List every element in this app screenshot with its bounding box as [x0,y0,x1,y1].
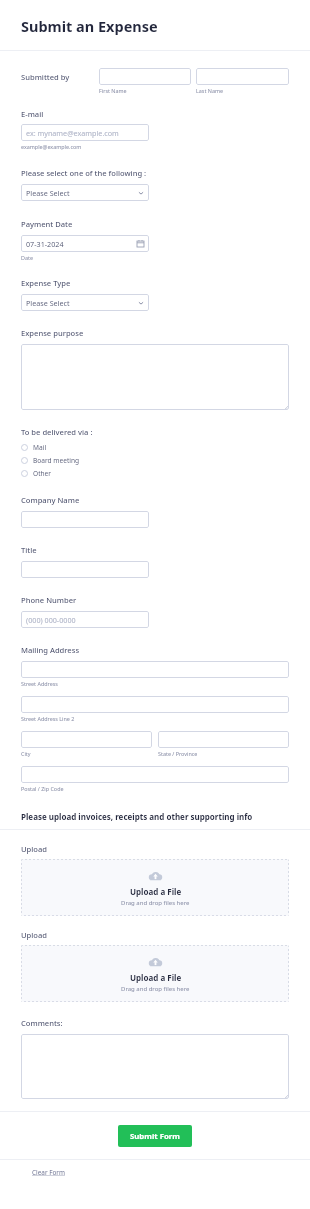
staticText: Payment Date [21,219,73,229]
button[interactable]: Clear Form [32,1168,65,1177]
button[interactable]: ex: myname@example.com [21,124,149,141]
button[interactable]: Upload a File [21,859,289,916]
staticText: Submit an Expense [21,16,158,36]
staticText: Mail [33,443,47,452]
staticText: Company Name [21,495,80,505]
staticText: Please select one of the following : [21,168,147,178]
staticText: Please Select [26,188,70,198]
staticText: First Name [99,87,127,94]
staticText: Comments: [21,1018,63,1028]
staticText: (000) 000-0000 [26,615,76,625]
button[interactable]: Other [21,467,289,480]
staticText: Street Address Line 2 [21,715,75,722]
button[interactable]: (000) 000-0000 [21,611,149,628]
staticText: Mailing Address [21,645,80,655]
button[interactable] [21,561,149,578]
staticText: Upload [21,844,48,854]
button[interactable] [196,68,289,85]
staticText: Street Address [21,680,58,687]
staticText: Submit Form [130,1131,180,1142]
button[interactable] [21,1034,289,1099]
button[interactable]: Submit Form [118,1125,192,1147]
staticText: Please upload invoices, receipts and oth… [21,811,253,822]
staticText: Drag and drop files here [121,985,190,993]
button[interactable]: Mail [21,441,289,454]
button[interactable] [21,344,289,410]
button[interactable] [21,661,289,678]
button[interactable] [21,696,289,713]
staticText: example@example.com [21,143,82,150]
button[interactable] [21,511,149,528]
button[interactable]: Please Select [21,294,149,311]
staticText: Postal / Zip Code [21,785,64,792]
staticText: Board meeting [33,456,80,465]
button[interactable]: 07-31-2024 [21,235,149,252]
staticText: Upload [21,930,48,940]
staticText: Expense Type [21,278,71,288]
staticText: To be delivered via : [21,427,93,437]
button[interactable] [21,731,152,748]
staticText: Upload a File [130,972,182,983]
staticText: Submitted by [21,72,70,82]
button[interactable] [21,766,289,783]
staticText: Date [21,254,33,261]
staticText: Last Name [196,87,223,94]
staticText: Please Select [26,298,70,308]
staticText: State / Province [158,750,198,757]
staticText: 07-31-2024 [26,239,64,249]
staticText: E-mail [21,109,44,119]
staticText: Clear Form [32,1168,65,1177]
button[interactable]: Please Select [21,184,149,201]
staticText: Phone Number [21,595,77,605]
button[interactable] [99,68,191,85]
staticText: Upload a File [130,886,182,897]
staticText: Other [33,469,52,478]
button[interactable]: Upload a File [21,945,289,1002]
button[interactable] [158,731,289,748]
staticText: ex: myname@example.com [26,128,119,138]
staticText: Expense purpose [21,328,84,338]
staticText: Title [21,545,37,555]
button[interactable]: Board meeting [21,454,289,467]
staticText: City [21,750,31,757]
staticText: Drag and drop files here [121,899,190,907]
